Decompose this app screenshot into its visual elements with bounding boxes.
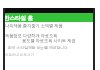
- staticText: 용도별 자료조회 사이트 제공: [22, 38, 76, 44]
- staticText: 이용안내 바로가기: [5, 52, 34, 57]
- staticText: 한스타일 홈: [4, 14, 33, 22]
- staticText: 제품정보 다양하게 자료조회: [5, 33, 58, 39]
- staticText: 한국 스타일제품 정보를 제공합니다: [8, 45, 68, 50]
- staticText: 나의제품 즐겨찾기 소재별 제품: [5, 23, 63, 29]
